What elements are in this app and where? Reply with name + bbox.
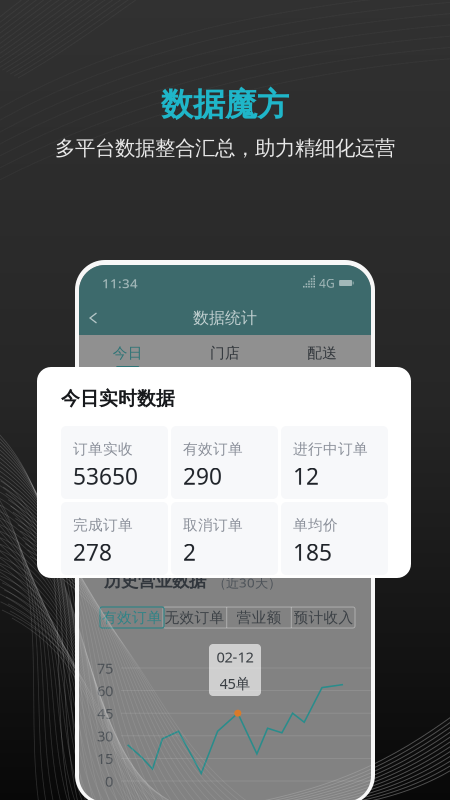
staticText: 有效订单 bbox=[183, 440, 243, 458]
staticText: 配送 bbox=[307, 344, 337, 362]
staticText: 门店 bbox=[210, 344, 240, 362]
staticText: 营业额 bbox=[236, 608, 281, 626]
staticText: 02-12 bbox=[216, 647, 253, 666]
staticText: 290 bbox=[183, 461, 222, 491]
staticText: 30 bbox=[97, 726, 113, 746]
button[interactable]: 有效订单 bbox=[100, 607, 164, 628]
staticText: 45单 bbox=[219, 673, 250, 693]
staticText: 185 bbox=[293, 537, 332, 567]
staticText: 有效订单 bbox=[102, 608, 162, 626]
button[interactable]: 门店 bbox=[176, 335, 274, 369]
staticText: 多平台数据整合汇总，助力精细化运营 bbox=[55, 135, 395, 161]
staticText: 历史营业数据 bbox=[104, 570, 206, 591]
staticText: 无效订单 bbox=[164, 608, 224, 626]
staticText: 15 bbox=[97, 749, 113, 768]
staticText: 进行中订单 bbox=[293, 440, 368, 458]
staticText: 取消订单 bbox=[183, 516, 243, 534]
button[interactable]: 返回 bbox=[80, 305, 106, 331]
staticText: 4G bbox=[319, 275, 335, 291]
staticText: 12 bbox=[293, 461, 319, 491]
button[interactable]: 配送 bbox=[274, 335, 371, 369]
button[interactable]: 今日 bbox=[79, 335, 176, 369]
staticText: 订单实收 bbox=[73, 440, 133, 458]
staticText: 75 bbox=[97, 658, 113, 678]
staticText: 60 bbox=[97, 681, 113, 700]
button[interactable]: 无效订单 bbox=[163, 607, 226, 628]
staticText: 预计收入 bbox=[294, 608, 354, 626]
staticText: 53650 bbox=[73, 461, 138, 491]
staticText: 2 bbox=[183, 537, 196, 567]
staticText: 单均价 bbox=[293, 516, 338, 534]
button[interactable]: 营业额 bbox=[227, 607, 291, 628]
staticText: 0 bbox=[105, 771, 113, 791]
button[interactable]: 预计收入 bbox=[292, 607, 355, 628]
staticText: 45 bbox=[97, 703, 113, 723]
staticText: 今日实时数据 bbox=[61, 387, 175, 410]
staticText: 278 bbox=[73, 537, 112, 567]
staticText: 数据魔方 bbox=[161, 85, 289, 124]
staticText: （近30天） bbox=[213, 574, 281, 591]
staticText: 11:34 bbox=[102, 274, 138, 292]
staticText: 今日 bbox=[113, 344, 143, 362]
staticText: 数据统计 bbox=[193, 308, 257, 328]
staticText: 完成订单 bbox=[73, 516, 133, 534]
